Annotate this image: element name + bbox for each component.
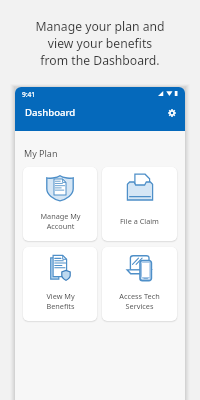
- staticText: Access Tech Services: [119, 291, 160, 311]
- button[interactable]: File a Claim: [102, 167, 177, 241]
- button[interactable]: Settings: [165, 106, 179, 120]
- staticText: View My Benefits: [46, 291, 75, 311]
- button[interactable]: View My Benefits: [23, 247, 97, 321]
- button[interactable]: Access Tech Services: [102, 247, 177, 321]
- staticText: 9:41: [22, 90, 36, 99]
- button[interactable]: Manage My Account: [23, 167, 97, 241]
- staticText: Manage your plan and view your benefits …: [35, 18, 165, 69]
- staticText: File a Claim: [120, 216, 159, 226]
- staticText: My Plan: [24, 147, 58, 159]
- staticText: Manage My Account: [40, 211, 81, 231]
- staticText: Dashboard: [25, 106, 76, 119]
